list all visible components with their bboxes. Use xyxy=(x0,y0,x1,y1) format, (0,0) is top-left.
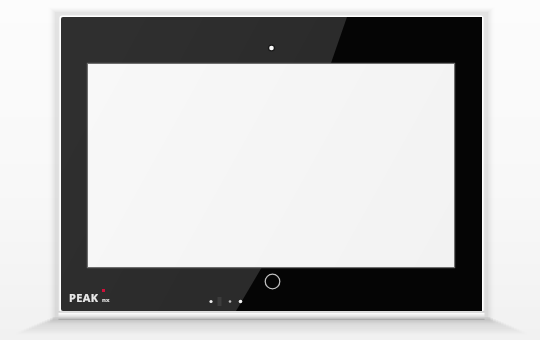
staticText: nx xyxy=(102,296,110,304)
staticText: PEAK xyxy=(69,290,99,305)
button[interactable]: Home xyxy=(264,273,281,290)
